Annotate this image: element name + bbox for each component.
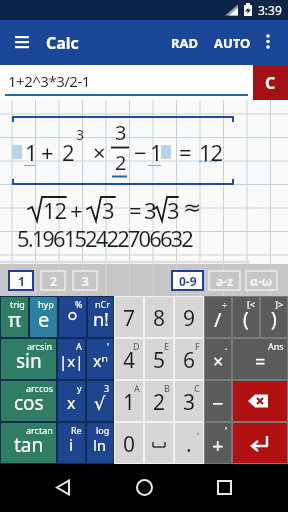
staticText: arccos: [26, 382, 53, 394]
button[interactable]: E: [145, 339, 173, 379]
button[interactable]: ': [87, 339, 113, 379]
button[interactable]: ]>: [261, 297, 287, 337]
staticText: /: [214, 306, 222, 333]
staticText: F: [195, 340, 200, 352]
staticText: hyp: [38, 298, 54, 310]
staticText: ): [271, 306, 277, 332]
staticText: (: [243, 306, 249, 332]
button[interactable]: [233, 381, 287, 421]
button[interactable]: 0: [115, 423, 143, 463]
staticText: 1+2^3*3/2-1: [8, 71, 90, 91]
staticText: 2: [62, 137, 74, 167]
button[interactable]: 3: [87, 381, 113, 421]
button[interactable]: [233, 423, 287, 463]
staticText: 5.196152422706632: [17, 223, 192, 253]
staticText: 7: [123, 304, 136, 333]
staticText: 3: [144, 195, 156, 225]
button[interactable]: arccos: [1, 381, 56, 421]
staticText: E: [164, 340, 170, 352]
button[interactable]: C: [253, 65, 288, 100]
button[interactable]: 7: [115, 297, 143, 337]
button[interactable]: trig: [1, 297, 28, 337]
button[interactable]: a-z: [208, 270, 241, 291]
button[interactable]: log: [87, 423, 113, 463]
button[interactable]: [96, 464, 192, 512]
button[interactable]: α-ω: [245, 270, 278, 291]
button[interactable]: [251, 20, 288, 65]
button[interactable]: %: [59, 297, 86, 337]
button[interactable]: 1+2^3*3/2-1: [0, 65, 253, 100]
staticText: xⁿ: [93, 350, 108, 372]
button[interactable]: Re: [58, 423, 85, 463]
staticText: 2: [115, 149, 126, 176]
staticText: 9: [183, 304, 196, 333]
staticText: ÷: [222, 298, 228, 310]
button[interactable]: 2: [40, 270, 66, 291]
button[interactable]: 3: [72, 270, 98, 291]
button[interactable]: 0-9: [171, 270, 204, 291]
button[interactable]: .: [205, 339, 231, 379]
button[interactable]: D: [115, 339, 143, 379]
staticText: =: [179, 137, 191, 167]
staticText: cos: [14, 390, 44, 416]
button[interactable]: B: [145, 381, 173, 421]
button[interactable]: −: [205, 381, 231, 421]
button[interactable]: y: [58, 381, 85, 421]
button[interactable]: F: [175, 339, 203, 379]
staticText: 1: [123, 388, 136, 417]
button[interactable]: [0, 20, 40, 65]
button[interactable]: RAD: [171, 34, 199, 52]
button[interactable]: 8: [145, 297, 173, 337]
staticText: C: [194, 382, 200, 394]
button[interactable]: arctan: [1, 423, 56, 463]
staticText: 0-9: [179, 273, 197, 289]
staticText: a-z: [216, 273, 233, 289]
staticText: −: [212, 390, 224, 417]
staticText: 12: [199, 137, 223, 167]
staticText: sin: [16, 348, 42, 374]
staticText: .: [225, 340, 228, 352]
staticText: Calc: [46, 32, 79, 54]
staticText: 3: [102, 195, 114, 225]
button[interactable]: ': [205, 423, 231, 463]
staticText: 0: [123, 430, 136, 459]
button[interactable]: ,: [175, 423, 203, 463]
staticText: C: [265, 72, 276, 94]
staticText: =: [255, 349, 266, 374]
staticText: 4: [123, 346, 136, 375]
button[interactable]: [<: [233, 297, 259, 337]
button[interactable]: 1: [8, 270, 34, 291]
staticText: D: [133, 340, 140, 352]
button[interactable]: [145, 423, 173, 463]
staticText: 2: [50, 273, 57, 289]
staticText: 3: [115, 119, 126, 146]
button[interactable]: hyp: [30, 297, 57, 337]
staticText: [<: [247, 298, 256, 310]
staticText: A: [76, 340, 82, 352]
staticText: ln: [93, 435, 107, 455]
button[interactable]: [192, 464, 288, 512]
staticText: α-ω: [250, 273, 273, 289]
button[interactable]: C: [175, 381, 203, 421]
staticText: x: [67, 392, 76, 414]
button[interactable]: AUTO: [214, 34, 251, 52]
button[interactable]: 9: [175, 297, 203, 337]
button[interactable]: Ans: [233, 339, 287, 379]
button[interactable]: ÷: [205, 297, 231, 337]
button[interactable]: A: [58, 339, 85, 379]
staticText: log: [96, 424, 110, 436]
staticText: y: [77, 382, 82, 394]
staticText: ]>: [275, 298, 284, 310]
button[interactable]: A: [115, 381, 143, 421]
staticText: 1: [150, 137, 162, 167]
staticText: =: [129, 195, 141, 225]
button[interactable]: nCr: [88, 297, 113, 337]
button[interactable]: [0, 464, 96, 512]
staticText: A: [134, 382, 140, 394]
staticText: −: [134, 137, 146, 167]
staticText: +: [70, 195, 82, 225]
staticText: ,: [197, 424, 200, 436]
button[interactable]: arcsin: [1, 339, 56, 379]
staticText: tan: [14, 432, 44, 458]
staticText: √: [94, 393, 106, 414]
